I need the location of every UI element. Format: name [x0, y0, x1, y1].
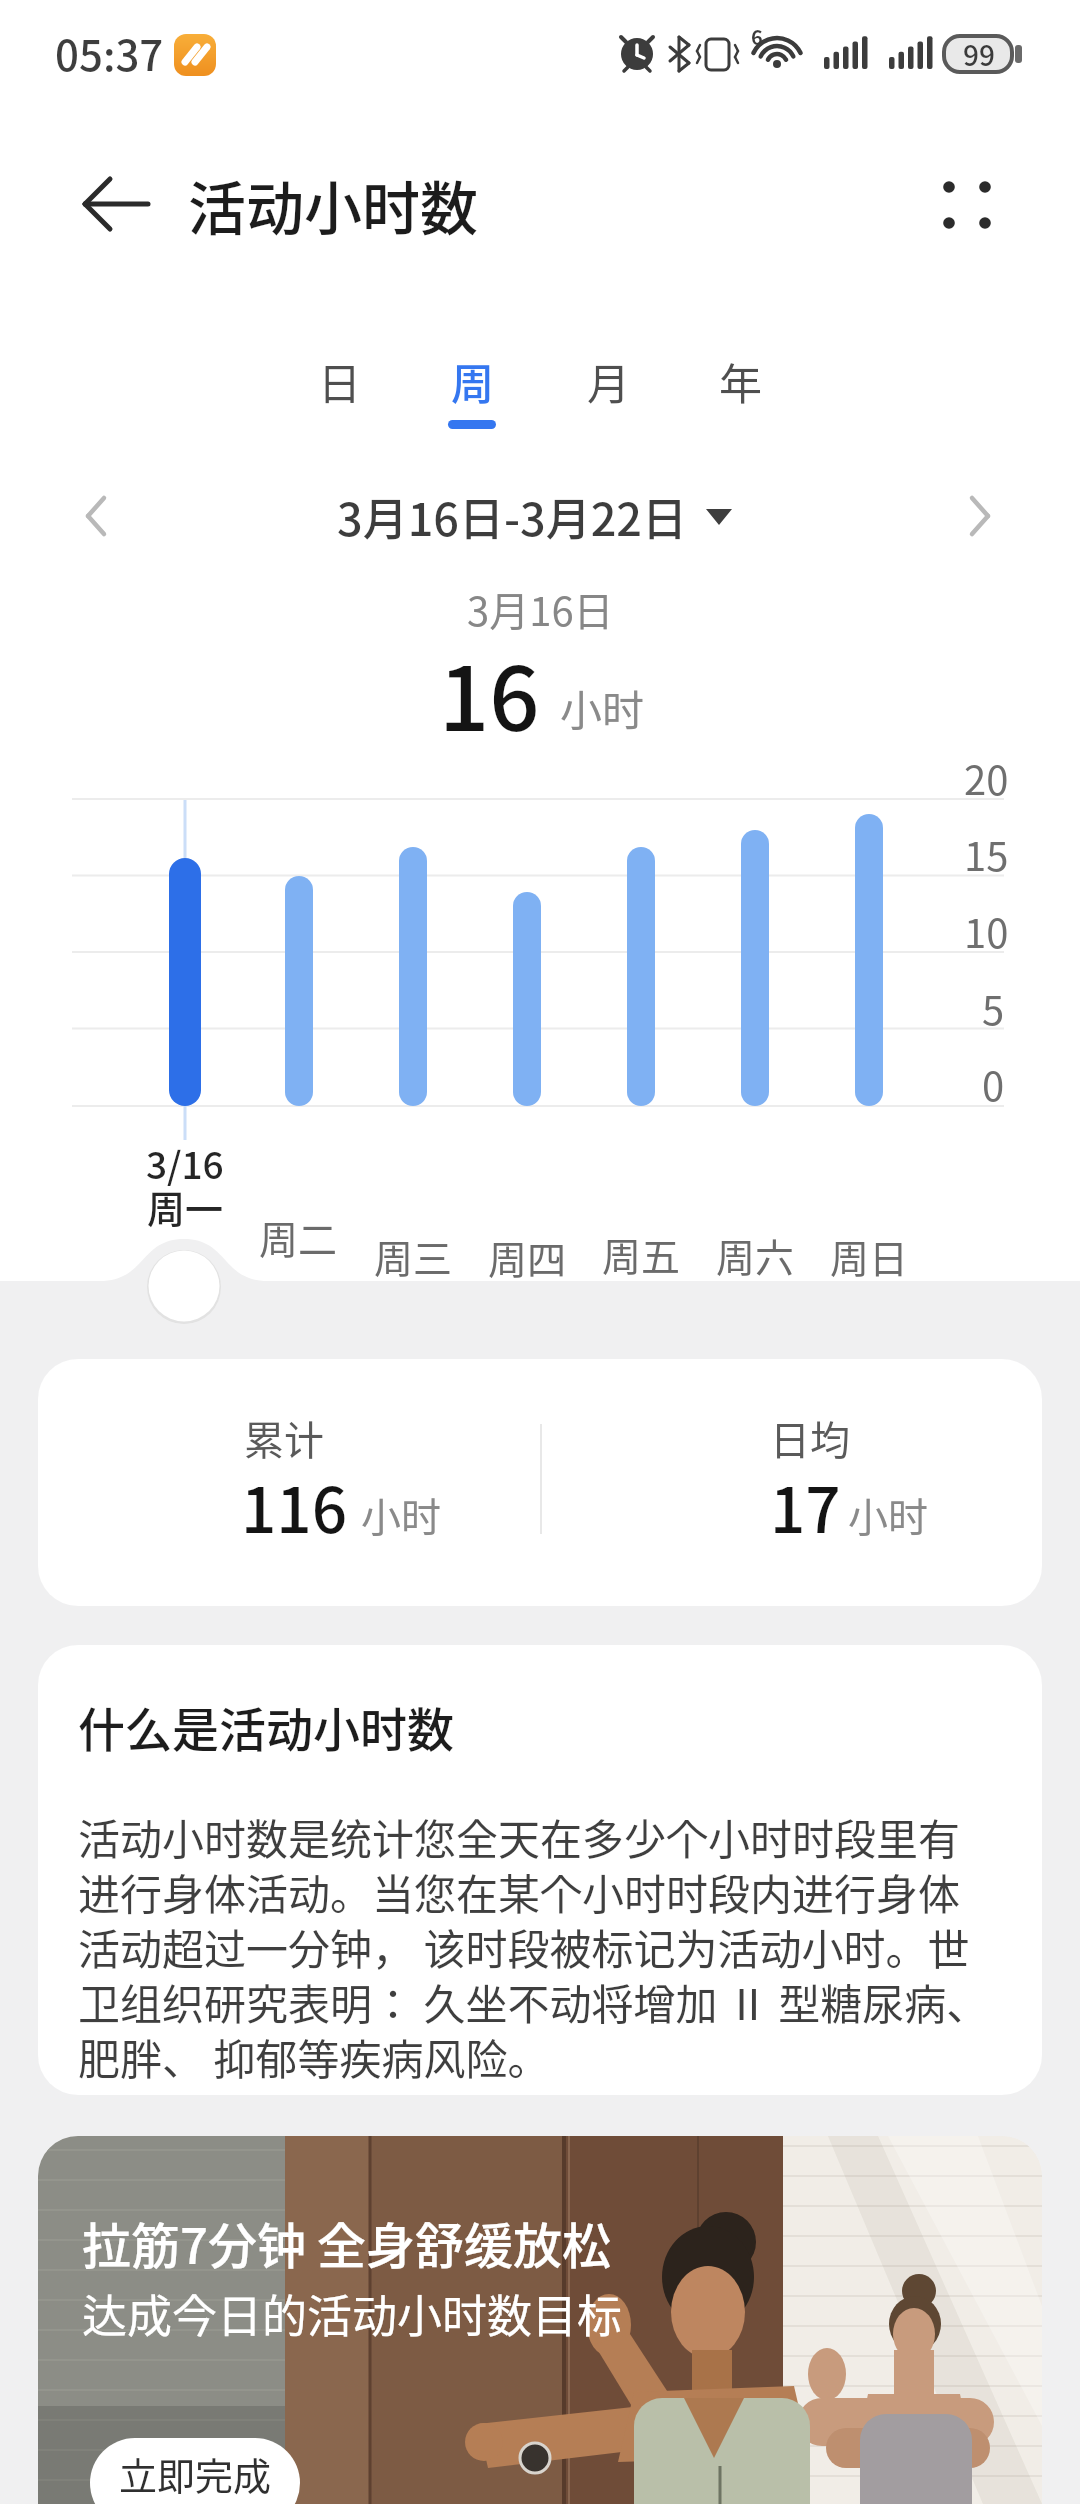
staticText: 日	[318, 350, 361, 412]
button[interactable]	[38, 1645, 1042, 2095]
button[interactable]	[38, 1359, 1042, 1606]
staticText: 年	[719, 350, 762, 412]
staticText: 周三	[374, 1228, 453, 1284]
staticText: 20	[964, 749, 1009, 807]
button[interactable]: 周	[407, 321, 537, 441]
button[interactable]	[944, 480, 1024, 552]
button[interactable]	[60, 170, 170, 240]
button[interactable]	[60, 480, 140, 552]
button[interactable]: 3月16日-3月22日	[262, 456, 762, 576]
staticText: 周五	[602, 1226, 681, 1282]
staticText: 活动小时数	[188, 163, 479, 247]
staticText: 99	[963, 34, 995, 75]
staticText: 日均	[770, 1409, 850, 1467]
staticText: 立即完成	[119, 2446, 272, 2501]
staticText: 3/16	[146, 1136, 224, 1190]
button[interactable]	[925, 165, 1010, 245]
staticText: 活动小时数是统计您全天在多少个小时时段里有 进行身体活动。当您在某个小时时段内进…	[78, 1806, 989, 2087]
staticText: 小时	[361, 1486, 441, 1544]
staticText: 周	[451, 350, 494, 412]
staticText: 周日	[830, 1228, 909, 1284]
staticText: 周一	[147, 1179, 224, 1234]
staticText: 15	[964, 825, 1009, 883]
staticText: 5	[982, 979, 1005, 1037]
staticText: 小时	[560, 677, 645, 738]
button[interactable]: 年	[675, 321, 805, 441]
staticText: 6	[751, 22, 763, 51]
staticText: 达成今日的活动小时数目标	[82, 2281, 623, 2346]
staticText: 05:37	[55, 22, 164, 83]
staticText: 116	[241, 1461, 348, 1551]
staticText: 周六	[716, 1227, 795, 1283]
button[interactable]: 日	[274, 321, 404, 441]
staticText: 16	[439, 629, 540, 756]
button[interactable]: 立即完成	[90, 2438, 300, 2504]
staticText: 累计	[244, 1409, 324, 1467]
staticText: 10	[964, 902, 1009, 960]
staticText: 3月16日	[467, 580, 614, 638]
staticText: 月	[587, 350, 630, 412]
staticText: 0	[982, 1055, 1005, 1113]
staticText: 17	[770, 1461, 841, 1551]
staticText: 什么是活动小时数	[78, 1692, 454, 1760]
staticText: 3月16日-3月22日	[337, 484, 687, 549]
staticText: 周四	[488, 1229, 567, 1285]
staticText: 小时	[848, 1486, 928, 1544]
staticText: 拉筋7分钟 全身舒缓放松	[82, 2207, 611, 2278]
button[interactable]: 月	[543, 321, 673, 441]
button[interactable]: 拉筋7分钟 全身舒缓放松	[38, 2136, 1042, 2504]
staticText: 周二	[259, 1209, 338, 1265]
